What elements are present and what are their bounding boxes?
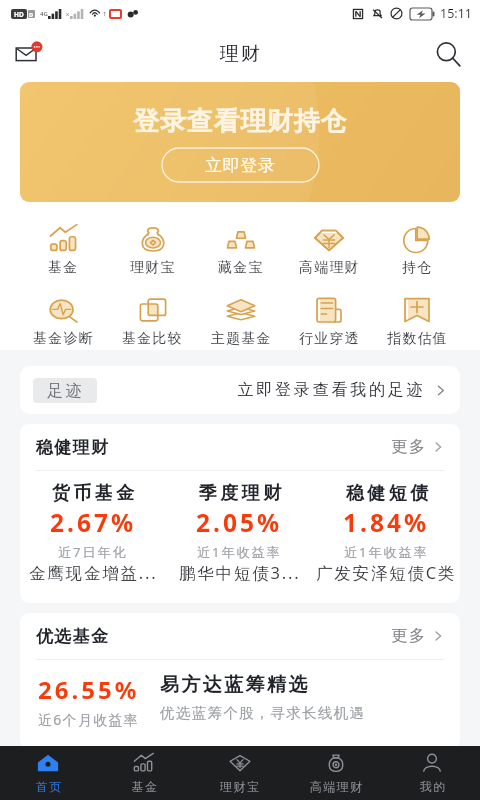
button[interactable]: 足迹	[20, 366, 460, 414]
button[interactable]: 藏金宝	[197, 224, 285, 277]
staticText: 15:11	[440, 5, 472, 22]
staticText: 2.67%	[50, 506, 137, 539]
button[interactable]: 我的	[384, 752, 480, 794]
staticText: 1.84%	[343, 506, 430, 539]
staticText: 足迹	[47, 381, 84, 401]
staticText: 稳健理财	[36, 437, 110, 458]
button[interactable]: 主题基金	[197, 295, 285, 348]
button[interactable]: Search	[428, 34, 468, 74]
staticText: 2.05%	[196, 506, 283, 539]
staticText: 基金	[48, 259, 79, 277]
staticText: 更多	[390, 626, 426, 646]
staticText: 立即登录	[205, 155, 276, 176]
button[interactable]: 首页	[0, 752, 96, 794]
staticText: 理财宝	[130, 259, 176, 277]
button[interactable]: Messages	[10, 34, 50, 74]
staticText: 广发安泽短债C类	[316, 561, 457, 584]
staticText: 首页	[35, 779, 62, 794]
button[interactable]: 货币基金	[20, 482, 166, 584]
staticText: 优选基金	[36, 626, 110, 647]
button[interactable]: 基金	[96, 752, 192, 794]
button[interactable]: 基金比较	[108, 295, 197, 348]
staticText: 近6个月收益率	[38, 710, 140, 729]
button[interactable]: 登录查看理财持仓	[20, 82, 460, 202]
staticText: 季度理财	[197, 482, 283, 505]
staticText: 基金	[131, 779, 158, 794]
staticText: 金鹰现金增益...	[29, 561, 158, 584]
button[interactable]: 稳健理财	[20, 424, 460, 470]
staticText: 指数估值	[387, 330, 448, 348]
staticText: 26.55%	[38, 673, 140, 706]
staticText: 优选蓝筹个股，寻求长线机遇	[160, 704, 366, 722]
staticText: 理财	[219, 42, 261, 66]
button[interactable]: 行业穿透	[285, 295, 373, 348]
button[interactable]: 高端理财	[288, 752, 384, 794]
button[interactable]: 26.55%	[20, 660, 460, 749]
staticText: 基金比较	[122, 330, 183, 348]
button[interactable]: 基金	[19, 224, 108, 277]
button[interactable]: 持仓	[373, 224, 461, 277]
staticText: 鹏华中短债3...	[179, 561, 301, 584]
staticText: HD	[14, 10, 24, 19]
staticText: 易方达蓝筹精选	[160, 673, 310, 697]
staticText: 基金诊断	[33, 330, 94, 348]
staticText: 持仓	[402, 259, 433, 277]
staticText: 藏金宝	[218, 259, 264, 277]
staticText: 我的	[419, 779, 446, 794]
staticText: 更多	[390, 437, 426, 457]
button[interactable]: 高端理财	[285, 224, 373, 277]
staticText: 4G	[40, 10, 48, 18]
staticText: 高端理财	[299, 259, 360, 277]
button[interactable]: 理财宝	[192, 752, 288, 794]
staticText: D	[29, 11, 34, 18]
staticText: x	[66, 10, 70, 18]
button[interactable]: 基金诊断	[19, 295, 108, 348]
button[interactable]: 立即登录	[162, 148, 319, 182]
staticText: 行业穿透	[299, 330, 360, 348]
button[interactable]: 稳健短债	[313, 482, 460, 584]
staticText: 主题基金	[211, 330, 272, 348]
staticText: 高端理财	[309, 779, 363, 794]
staticText: 货币基金	[50, 482, 136, 505]
staticText: 稳健短债	[344, 482, 430, 505]
staticText: 立即登录查看我的足迹	[236, 380, 424, 400]
staticText: 近7日年化	[58, 543, 128, 561]
button[interactable]: 理财宝	[108, 224, 197, 277]
staticText: 理财宝	[220, 779, 261, 794]
button[interactable]: 季度理财	[166, 482, 313, 584]
button[interactable]: 优选基金	[20, 613, 460, 659]
staticText: 1	[103, 10, 107, 18]
staticText: 近1年收益率	[197, 543, 282, 561]
staticText: 近1年收益率	[344, 543, 429, 561]
staticText: 登录查看理财持仓	[133, 105, 348, 138]
button[interactable]: 指数估值	[373, 295, 461, 348]
